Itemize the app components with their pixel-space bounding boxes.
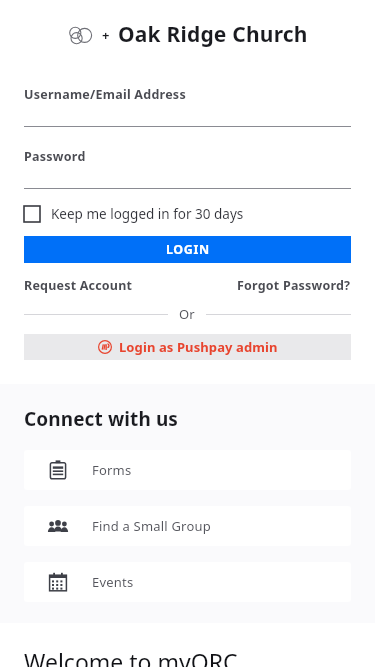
button[interactable]: Forms (24, 450, 351, 490)
staticText: Username/Email Address (24, 86, 186, 103)
button[interactable]: Find a Small Group (24, 506, 351, 546)
staticText: Keep me logged in for 30 days (51, 205, 244, 223)
staticText: Or (179, 305, 195, 323)
staticText: Oak Ridge Church (118, 20, 308, 49)
staticText: LOGIN (166, 241, 210, 258)
button[interactable]: LOGIN (24, 236, 351, 263)
staticText: Find a Small Group (92, 517, 211, 535)
button[interactable]: Keep me logged in for 30 days (24, 205, 244, 223)
staticText: Connect with us (24, 406, 178, 432)
staticText: Login as Pushpay admin (119, 338, 278, 356)
staticText: Forgot Password? (237, 277, 351, 294)
staticText: Events (92, 573, 134, 591)
staticText: Request Account (24, 277, 133, 294)
button[interactable]: Login as Pushpay admin (24, 334, 351, 360)
button[interactable]: Request Account (24, 277, 133, 294)
other: Pushpay logo (68, 26, 94, 44)
button[interactable]: Events (24, 562, 351, 602)
staticText: Welcome to myORC (24, 646, 238, 667)
button[interactable]: Forgot Password? (237, 277, 351, 294)
staticText: Password (24, 148, 86, 165)
staticText: Forms (92, 461, 132, 479)
staticText: + (102, 26, 110, 44)
